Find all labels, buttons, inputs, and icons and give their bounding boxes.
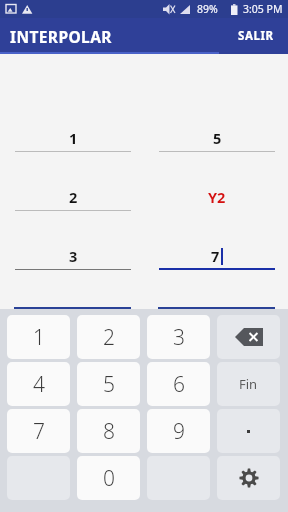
button[interactable]: 2	[15, 187, 131, 211]
button[interactable]: Settings	[217, 456, 280, 500]
staticText: 1	[33, 323, 45, 352]
staticText: Fin	[239, 375, 258, 393]
button[interactable]: 9	[147, 409, 210, 453]
button[interactable]: 3	[15, 246, 131, 270]
staticText: 1	[69, 128, 78, 148]
staticText: 5	[213, 128, 222, 148]
staticText: 2	[103, 323, 115, 352]
staticText: 3:05 PM	[243, 2, 283, 16]
staticText: 0	[103, 464, 115, 493]
button[interactable]: 4	[7, 362, 70, 406]
button[interactable]: Decimal point	[217, 409, 280, 453]
button[interactable]: 8	[77, 409, 140, 453]
staticText: 89%	[197, 2, 218, 16]
button[interactable]: Y2	[159, 187, 275, 211]
staticText: Y2	[208, 187, 226, 207]
staticText: 7	[211, 246, 220, 266]
staticText: BORRAR	[47, 317, 98, 333]
button[interactable]: 1	[7, 315, 70, 359]
button[interactable]: 7	[159, 246, 275, 270]
button[interactable]: 0	[77, 456, 140, 500]
staticText: 4	[33, 370, 45, 399]
staticText: 5	[103, 370, 115, 399]
button[interactable]: BORRAR	[14, 307, 131, 342]
button[interactable]: Delete	[217, 315, 280, 359]
staticText: 8	[103, 417, 115, 446]
button[interactable]: Fin	[217, 362, 280, 406]
button[interactable]: 5	[77, 362, 140, 406]
staticText: 7	[33, 417, 45, 446]
staticText: 3	[173, 323, 185, 352]
staticText: 9	[173, 417, 185, 446]
button[interactable]: 2	[77, 315, 140, 359]
staticText: SALIR	[238, 28, 274, 44]
button[interactable]: SALIR	[234, 24, 278, 48]
button[interactable]: CALCULAR	[158, 307, 275, 342]
button[interactable]: 6	[147, 362, 210, 406]
button[interactable]: 1	[15, 128, 131, 152]
staticText: 6	[173, 370, 185, 399]
staticText: 2	[69, 187, 78, 207]
staticText: 3	[69, 246, 78, 266]
button[interactable]: 7	[7, 409, 70, 453]
button[interactable]: 5	[159, 128, 275, 152]
button[interactable]: 3	[147, 315, 210, 359]
staticText: INTERPOLAR	[10, 26, 112, 47]
staticText: CALCULAR	[185, 317, 249, 333]
